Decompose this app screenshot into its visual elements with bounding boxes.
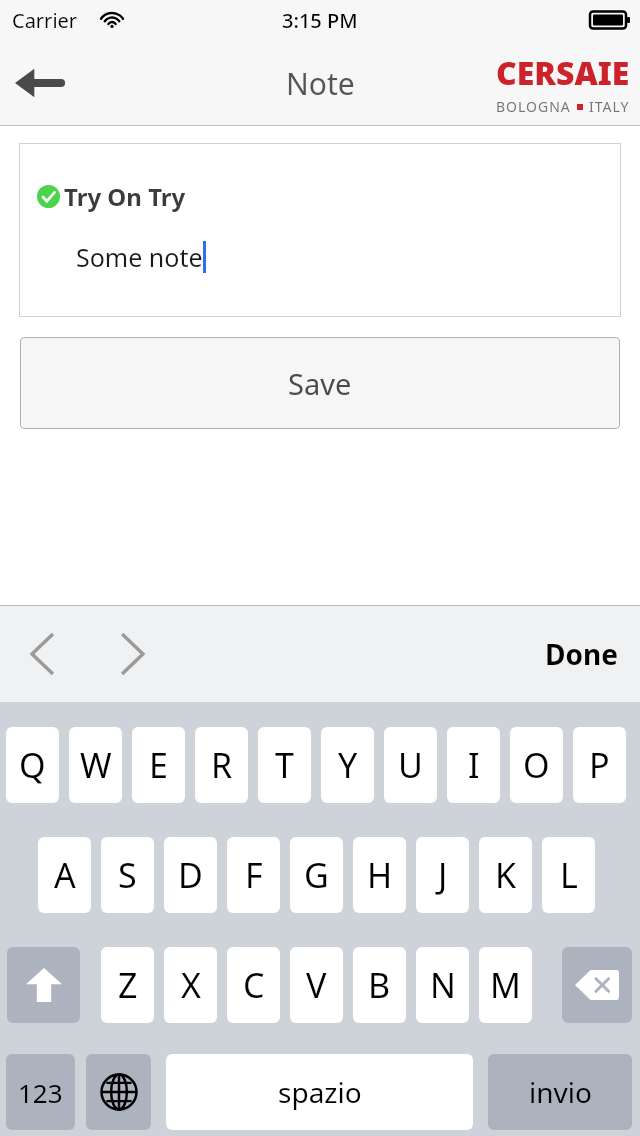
button[interactable]: H: [353, 837, 406, 913]
button[interactable]: Try On Try: [19, 143, 621, 317]
staticText: CERSAIE: [496, 51, 630, 95]
staticText: H: [367, 852, 393, 898]
button[interactable]: D: [164, 837, 217, 913]
button[interactable]: L: [542, 837, 595, 913]
staticText: N: [430, 962, 456, 1008]
staticText: C: [243, 962, 265, 1008]
button[interactable]: Back: [6, 51, 70, 115]
button[interactable]: M: [479, 947, 532, 1023]
button[interactable]: invio: [488, 1054, 632, 1130]
staticText: Q: [19, 742, 46, 788]
staticText: Try On Try: [64, 180, 186, 213]
button[interactable]: Done: [537, 627, 626, 681]
staticText: F: [245, 852, 263, 898]
staticText: E: [149, 742, 168, 788]
button[interactable]: Save: [20, 337, 620, 429]
button[interactable]: S: [101, 837, 154, 913]
staticText: ITALY: [589, 97, 630, 116]
button[interactable]: T: [258, 727, 311, 803]
staticText: L: [560, 852, 578, 898]
staticText: spazio: [278, 1073, 362, 1111]
button[interactable]: C: [227, 947, 280, 1023]
staticText: B: [368, 962, 391, 1008]
staticText: A: [54, 852, 76, 898]
button[interactable]: E: [132, 727, 185, 803]
button[interactable]: R: [195, 727, 248, 803]
button[interactable]: J: [416, 837, 469, 913]
button[interactable]: Backspace: [562, 947, 632, 1023]
staticText: Y: [338, 742, 358, 788]
staticText: R: [211, 742, 233, 788]
staticText: V: [306, 962, 327, 1008]
staticText: Z: [118, 962, 138, 1008]
staticText: W: [80, 742, 112, 788]
staticText: Save: [288, 364, 352, 403]
button[interactable]: Y: [321, 727, 374, 803]
button[interactable]: Previous field: [14, 625, 72, 683]
button[interactable]: K: [479, 837, 532, 913]
button[interactable]: Next field: [103, 625, 161, 683]
staticText: P: [589, 742, 610, 788]
staticText: D: [178, 852, 203, 898]
staticText: T: [275, 742, 294, 788]
button[interactable]: B: [353, 947, 406, 1023]
staticText: Done: [545, 635, 618, 673]
button[interactable]: Q: [6, 727, 59, 803]
button[interactable]: Change keyboard: [86, 1054, 151, 1130]
button[interactable]: N: [416, 947, 469, 1023]
button[interactable]: 123: [6, 1054, 75, 1130]
staticText: I: [468, 742, 480, 788]
button[interactable]: Shift: [7, 947, 80, 1023]
staticText: X: [181, 962, 201, 1008]
staticText: invio: [529, 1073, 592, 1111]
staticText: U: [398, 742, 423, 788]
button[interactable]: O: [510, 727, 563, 803]
button[interactable]: Z: [101, 947, 154, 1023]
button[interactable]: G: [290, 837, 343, 913]
staticText: K: [495, 852, 517, 898]
button[interactable]: P: [573, 727, 626, 803]
staticText: S: [118, 852, 137, 898]
button[interactable]: V: [290, 947, 343, 1023]
staticText: M: [490, 962, 521, 1008]
button[interactable]: I: [447, 727, 500, 803]
staticText: O: [523, 742, 550, 788]
staticText: Some note: [76, 240, 203, 274]
button[interactable]: A: [38, 837, 91, 913]
staticText: 3:15 PM: [282, 7, 358, 34]
button[interactable]: F: [227, 837, 280, 913]
button[interactable]: spazio: [166, 1054, 473, 1130]
staticText: Note: [286, 63, 355, 104]
staticText: J: [438, 852, 448, 898]
button[interactable]: W: [69, 727, 122, 803]
staticText: 123: [18, 1075, 63, 1110]
button[interactable]: X: [164, 947, 217, 1023]
button[interactable]: U: [384, 727, 437, 803]
staticText: G: [304, 852, 329, 898]
staticText: Carrier: [12, 7, 78, 34]
staticText: BOLOGNA: [496, 97, 571, 116]
